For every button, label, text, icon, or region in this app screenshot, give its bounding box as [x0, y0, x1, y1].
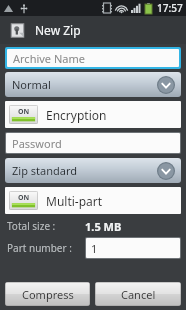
staticText: Password: [12, 136, 62, 151]
button[interactable]: Password: [6, 133, 180, 153]
button[interactable]: 1: [86, 238, 180, 258]
staticText: New Zip: [35, 22, 81, 38]
staticText: Encryption: [46, 107, 107, 123]
staticText: Normal: [12, 77, 51, 92]
staticText: Total size :: [7, 219, 85, 233]
button[interactable]: Multi-part toggle, on: [9, 191, 38, 210]
button[interactable]: Normal: [5, 72, 181, 97]
button[interactable]: Compress: [5, 282, 90, 306]
staticText: ON: [18, 193, 30, 203]
staticText: Cancel: [121, 287, 156, 302]
button[interactable]: Encryption toggle, on: [5, 101, 181, 128]
staticText: 1.5 MB: [85, 219, 122, 234]
staticText: Part number :: [7, 241, 85, 255]
staticText: Archive Name: [13, 51, 85, 66]
staticText: Multi-part: [46, 193, 103, 209]
button[interactable]: Cancel: [95, 282, 181, 306]
button[interactable]: Encryption toggle, on: [9, 105, 38, 124]
button[interactable]: Multi-part toggle, on: [5, 187, 181, 214]
staticText: 17:57: [157, 1, 183, 15]
staticText: Compress: [22, 287, 74, 302]
staticText: Zip standard: [12, 163, 77, 178]
staticText: 1: [91, 241, 98, 256]
button[interactable]: Archive Name: [7, 49, 179, 67]
staticText: ON: [18, 107, 30, 117]
button[interactable]: Zip standard: [5, 158, 181, 183]
